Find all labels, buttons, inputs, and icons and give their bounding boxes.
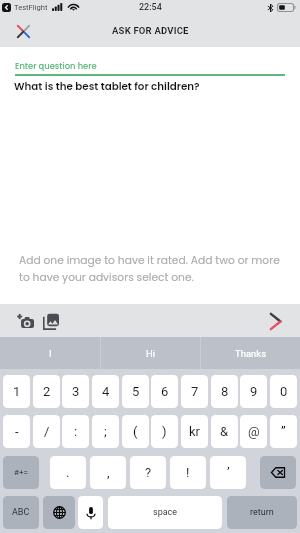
button[interactable]: ) [151,415,178,448]
button[interactable]: Choose photo [41,310,60,332]
staticText: 1 [13,384,21,399]
staticText: ( [133,424,138,439]
staticText: 3 [72,384,80,399]
staticText: ABC [12,507,30,518]
staticText: Hi [146,348,156,359]
button[interactable]: Close [11,19,35,43]
button[interactable]: 3 [62,375,89,408]
staticText: 7 [191,384,199,399]
button[interactable]: 6 [151,375,178,408]
staticText: space [153,507,178,518]
button[interactable]: . [50,456,86,489]
staticText: ? [145,465,152,480]
button[interactable]: 2 [33,375,60,408]
button[interactable]: : [62,415,89,448]
button[interactable]: ’ [210,456,246,489]
staticText: @ [248,424,260,439]
button[interactable]: ABC [3,496,39,529]
button[interactable]: , [90,456,126,489]
button[interactable]: 8 [211,375,238,408]
staticText: 6 [161,384,169,399]
button[interactable]: space [108,496,222,529]
staticText: / [44,424,50,439]
button[interactable]: 5 [122,375,149,408]
button[interactable]: ! [170,456,206,489]
button[interactable]: 0 [270,375,297,408]
button[interactable]: Send [263,309,287,333]
button[interactable]: return [227,496,297,529]
staticText: Add one image to have it rated. Add two … [19,253,280,284]
staticText: : [74,424,78,439]
button[interactable]: & [211,415,238,448]
staticText: ” [281,424,286,439]
staticText: 5 [132,384,140,399]
staticText: Enter question here [15,60,97,72]
staticText: 8 [221,384,229,399]
button[interactable]: Thanks [201,337,300,369]
button[interactable]: Dictation [78,496,103,529]
button[interactable]: - [3,415,30,448]
button[interactable]: 9 [240,375,267,408]
staticText: TestFlight [14,3,48,12]
staticText: ’ [227,465,230,480]
staticText: 22:54 [139,2,162,13]
staticText: #+= [14,468,28,477]
staticText: ! [186,465,190,480]
staticText: ) [162,424,167,439]
button[interactable]: Take photo [15,310,36,332]
staticText: , [107,465,110,480]
button[interactable]: Backspace [260,456,296,489]
staticText: 4 [102,384,110,399]
button[interactable]: / [33,415,60,448]
staticText: . [66,465,70,480]
button[interactable]: ” [270,415,297,448]
staticText: ; [104,424,107,439]
staticText: Thanks [235,348,267,359]
button[interactable]: ( [122,415,149,448]
staticText: ASK FOR ADVICE [112,25,189,36]
staticText: return [250,507,274,518]
staticText: What is the best tablet for children? [14,79,200,93]
staticText: kr [189,424,200,439]
staticText: 2 [43,384,51,399]
button[interactable]: Hi [101,337,200,369]
button[interactable]: kr [181,415,208,448]
button[interactable]: @ [240,415,267,448]
button[interactable]: ? [130,456,166,489]
button[interactable]: I [0,337,100,369]
staticText: & [220,424,229,439]
staticText: 0 [280,384,288,399]
staticText: - [15,424,19,439]
button[interactable]: Change keyboard language [43,496,75,529]
staticText: I [49,348,52,359]
button[interactable]: 1 [3,375,30,408]
button[interactable]: 4 [92,375,119,408]
button[interactable]: 7 [181,375,208,408]
button[interactable]: ; [92,415,119,448]
staticText: 9 [250,384,258,399]
button[interactable]: #+= [3,456,39,489]
